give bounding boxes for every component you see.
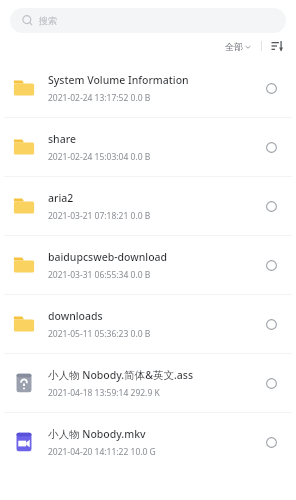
staticText: 2021-03-21 07:18:21 0.0 B <box>48 210 151 222</box>
button[interactable]: baidupcsweb-download <box>0 236 296 294</box>
button[interactable]: 选择 <box>260 254 282 276</box>
button[interactable]: 选择 <box>260 372 282 394</box>
staticText: 2021-05-11 05:36:23 0.0 B <box>48 328 151 340</box>
button[interactable]: 小人物 Nobody.mkv <box>0 413 296 471</box>
button[interactable]: share <box>0 118 296 176</box>
staticText: 2021-04-20 14:11:22 10.0 G <box>48 446 156 458</box>
button[interactable]: 搜索 <box>10 8 286 33</box>
button[interactable]: 选择 <box>260 313 282 335</box>
button[interactable]: 排序 <box>268 37 286 55</box>
staticText: share <box>48 132 76 146</box>
staticText: baidupcsweb-download <box>48 250 168 264</box>
staticText: 全部 <box>225 41 243 52</box>
staticText: downloads <box>48 309 103 323</box>
button[interactable]: 小人物 Nobody.简体&英文.ass <box>0 354 296 412</box>
staticText: 2021-02-24 15:03:04 0.0 B <box>48 151 151 163</box>
button[interactable]: 选择 <box>260 77 282 99</box>
button[interactable]: downloads <box>0 295 296 353</box>
button[interactable]: aria2 <box>0 177 296 235</box>
button[interactable]: 选择 <box>260 195 282 217</box>
staticText: 小人物 Nobody.简体&英文.ass <box>48 368 194 382</box>
staticText: 小人物 Nobody.mkv <box>48 427 146 441</box>
staticText: 搜索 <box>39 15 57 26</box>
staticText: System Volume Information <box>48 73 189 87</box>
button[interactable]: 选择 <box>260 136 282 158</box>
button[interactable]: 全部 <box>221 39 255 54</box>
staticText: 2021-02-24 13:17:52 0.0 B <box>48 92 151 104</box>
staticText: 2021-03-31 06:55:34 0.0 B <box>48 269 151 281</box>
staticText: aria2 <box>48 191 74 205</box>
button[interactable]: System Volume Information <box>0 59 296 117</box>
staticText: 2021-04-18 13:59:14 292.9 K <box>48 387 160 399</box>
button[interactable]: 选择 <box>260 431 282 453</box>
